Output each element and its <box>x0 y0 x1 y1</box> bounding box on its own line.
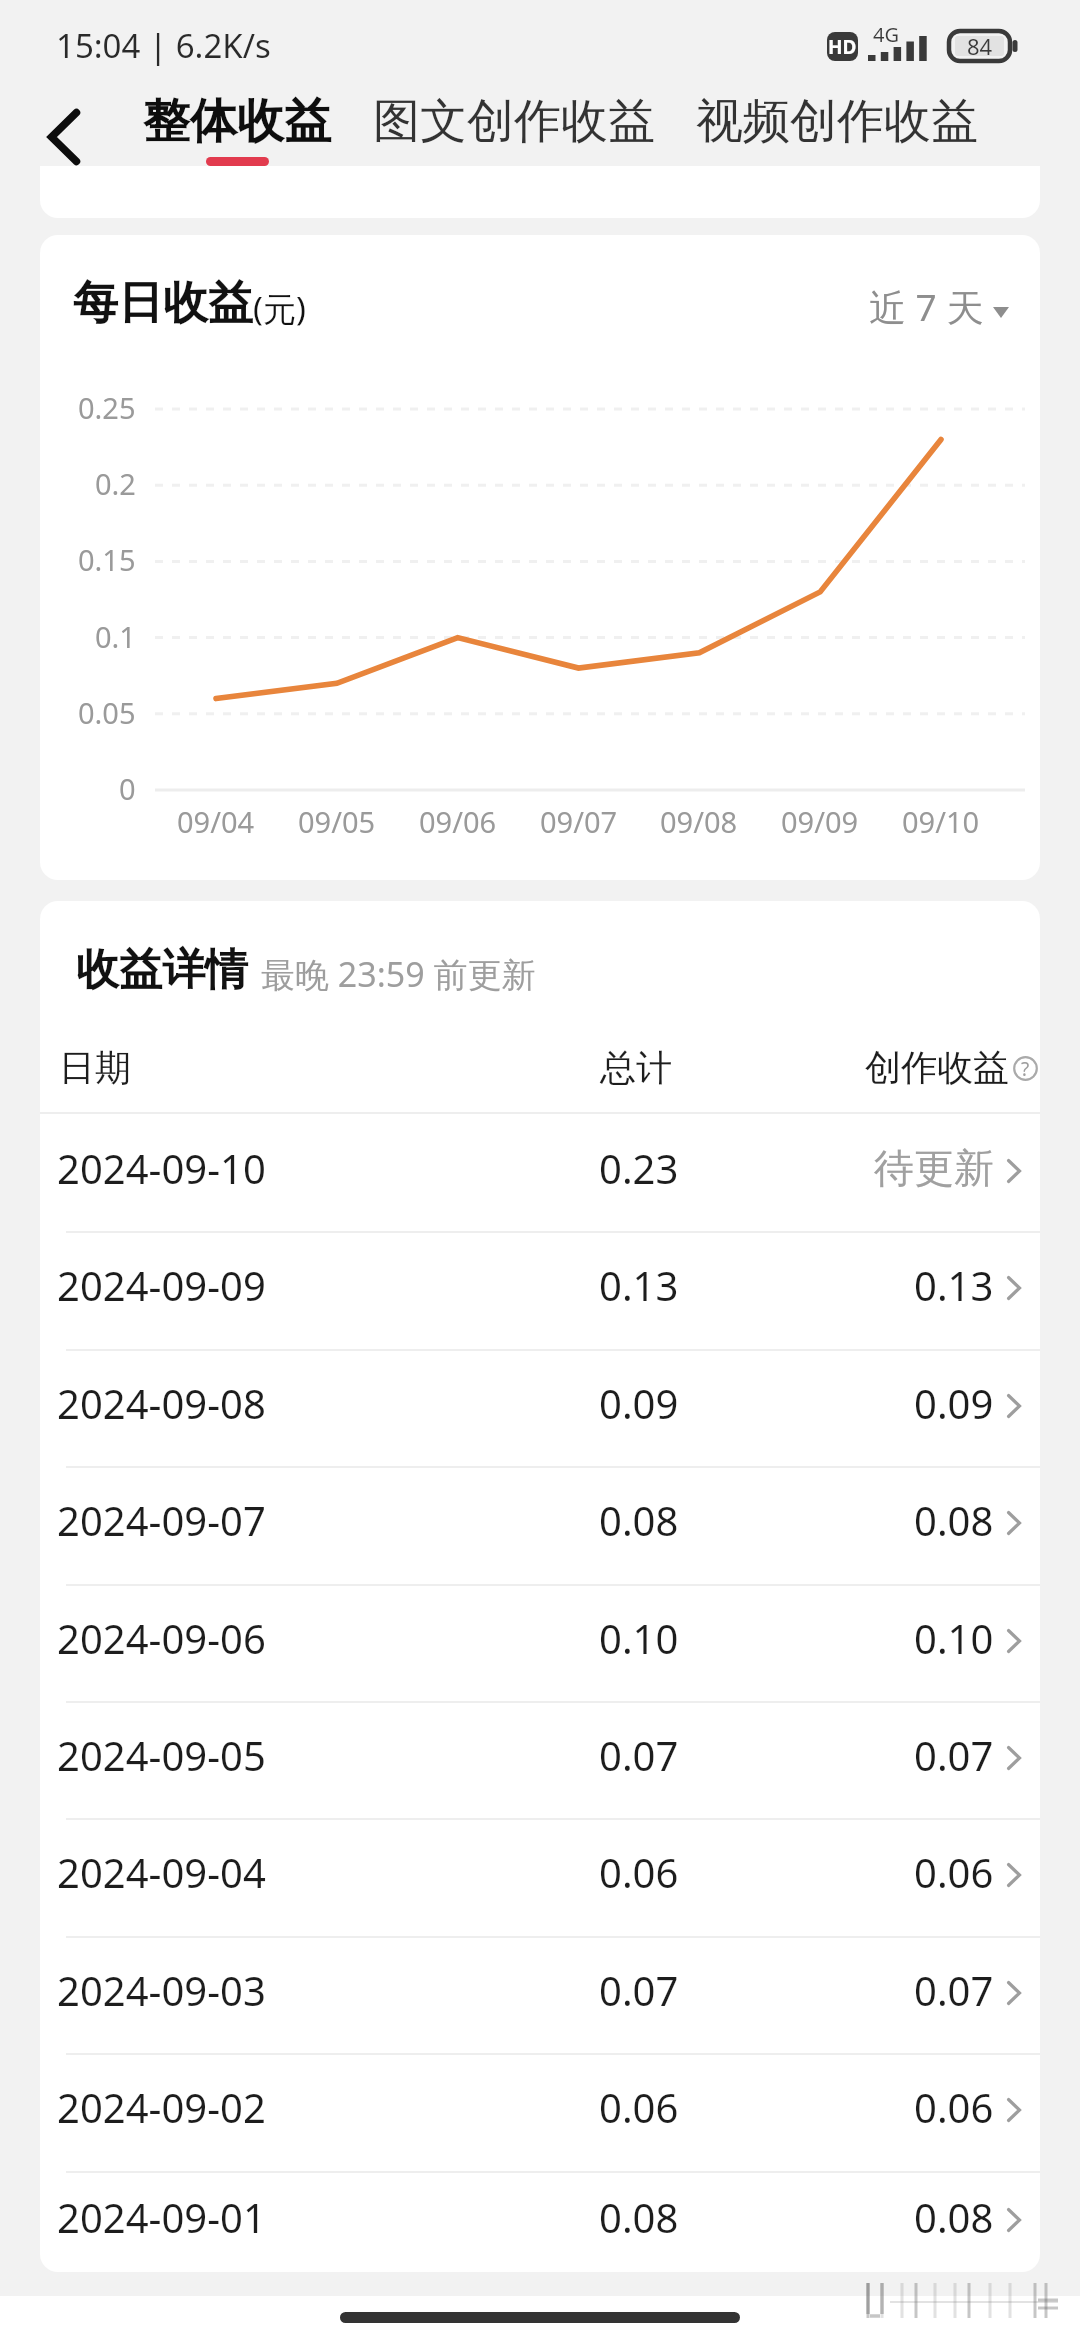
button[interactable]: 2024-09-08 <box>40 1349 1040 1466</box>
staticText: 0.1 <box>95 617 136 656</box>
button[interactable]: Back <box>19 92 109 182</box>
staticText: 2024-09-08 <box>57 1376 266 1430</box>
staticText: 0.07 <box>914 1728 994 1782</box>
staticText: 2024-09-10 <box>57 1141 266 1195</box>
staticText: 最晚 23:59 前更新 <box>261 951 536 997</box>
staticText: 84 <box>967 31 993 61</box>
staticText: 15:04 | 6.2K/s <box>56 23 271 68</box>
staticText: 2024-09-09 <box>57 1258 266 1312</box>
button[interactable]: 2024-09-01 <box>40 2171 1040 2272</box>
button[interactable]: 2024-09-06 <box>40 1584 1040 1701</box>
staticText: 0.06 <box>599 1845 679 1899</box>
staticText: 0 <box>119 769 136 808</box>
staticText: 2024-09-04 <box>57 1845 266 1899</box>
staticText: 0.10 <box>599 1611 679 1665</box>
button[interactable]: 2024-09-07 <box>40 1466 1040 1584</box>
staticText: 0.06 <box>914 2080 994 2134</box>
staticText: 视频创作收益 <box>696 92 978 151</box>
button[interactable]: 2024-09-10 <box>40 1114 1040 1231</box>
staticText: 0.06 <box>914 1845 994 1899</box>
staticText: 整体收益 <box>143 92 331 151</box>
staticText: 0.07 <box>914 1963 994 2017</box>
staticText: 总计 <box>600 1045 672 1090</box>
staticText: 0.09 <box>914 1376 994 1430</box>
button[interactable]: 2024-09-03 <box>40 1936 1040 2053</box>
staticText: 2024-09-03 <box>57 1963 266 2017</box>
staticText: 0.08 <box>914 1493 994 1547</box>
staticText: 每日收益 <box>73 275 253 332</box>
staticText: 0.07 <box>599 1963 679 2017</box>
staticText: 09/06 <box>419 802 497 841</box>
button[interactable]: 2024-09-02 <box>40 2053 1040 2171</box>
staticText: 图文创作收益 <box>373 92 655 151</box>
button[interactable]: 近 7 天 <box>869 281 1009 332</box>
button[interactable]: 2024-09-04 <box>40 1818 1040 1936</box>
staticText: 09/04 <box>177 802 255 841</box>
staticText: 0.2 <box>95 464 136 503</box>
staticText: 0.06 <box>599 2080 679 2134</box>
button[interactable]: 图文创作收益 <box>373 92 655 170</box>
staticText: 0.10 <box>914 1611 994 1665</box>
staticText: 0.08 <box>914 2190 994 2244</box>
staticText: 4G <box>873 21 899 48</box>
staticText: 0.15 <box>78 540 136 579</box>
staticText: 0.13 <box>914 1258 994 1312</box>
staticText: HD <box>828 34 857 60</box>
staticText: 09/08 <box>660 802 738 841</box>
staticText: 0.13 <box>599 1258 679 1312</box>
staticText: 待更新 <box>874 1143 994 1193</box>
staticText: 0.09 <box>599 1376 679 1430</box>
staticText: 2024-09-02 <box>57 2080 266 2134</box>
button[interactable]: 视频创作收益 <box>696 92 978 170</box>
staticText: 0.08 <box>599 1493 679 1547</box>
staticText: 收益详情 <box>76 943 248 997</box>
staticText: 0.05 <box>78 693 136 732</box>
staticText: (元) <box>253 286 306 331</box>
button[interactable]: 2024-09-05 <box>40 1701 1040 1818</box>
staticText: 0.25 <box>78 388 136 427</box>
staticText: 09/05 <box>298 802 376 841</box>
staticText: 09/07 <box>540 802 618 841</box>
staticText: 09/09 <box>781 802 859 841</box>
staticText: 2024-09-05 <box>57 1728 266 1782</box>
staticText: 2024-09-07 <box>57 1493 266 1547</box>
staticText: 0.23 <box>599 1141 679 1195</box>
button[interactable]: 整体收益 <box>143 92 331 170</box>
staticText: 2024-09-01 <box>57 2190 266 2244</box>
staticText: 创作收益 <box>865 1045 1009 1090</box>
staticText: 2024-09-06 <box>57 1611 266 1665</box>
staticText: 0.08 <box>599 2190 679 2244</box>
staticText: 0.07 <box>599 1728 679 1782</box>
staticText: ? <box>1021 1056 1030 1081</box>
staticText: 近 7 天 <box>869 281 984 332</box>
staticText: 09/10 <box>902 802 980 841</box>
staticText: 日期 <box>59 1045 131 1090</box>
button[interactable]: 2024-09-09 <box>40 1231 1040 1349</box>
